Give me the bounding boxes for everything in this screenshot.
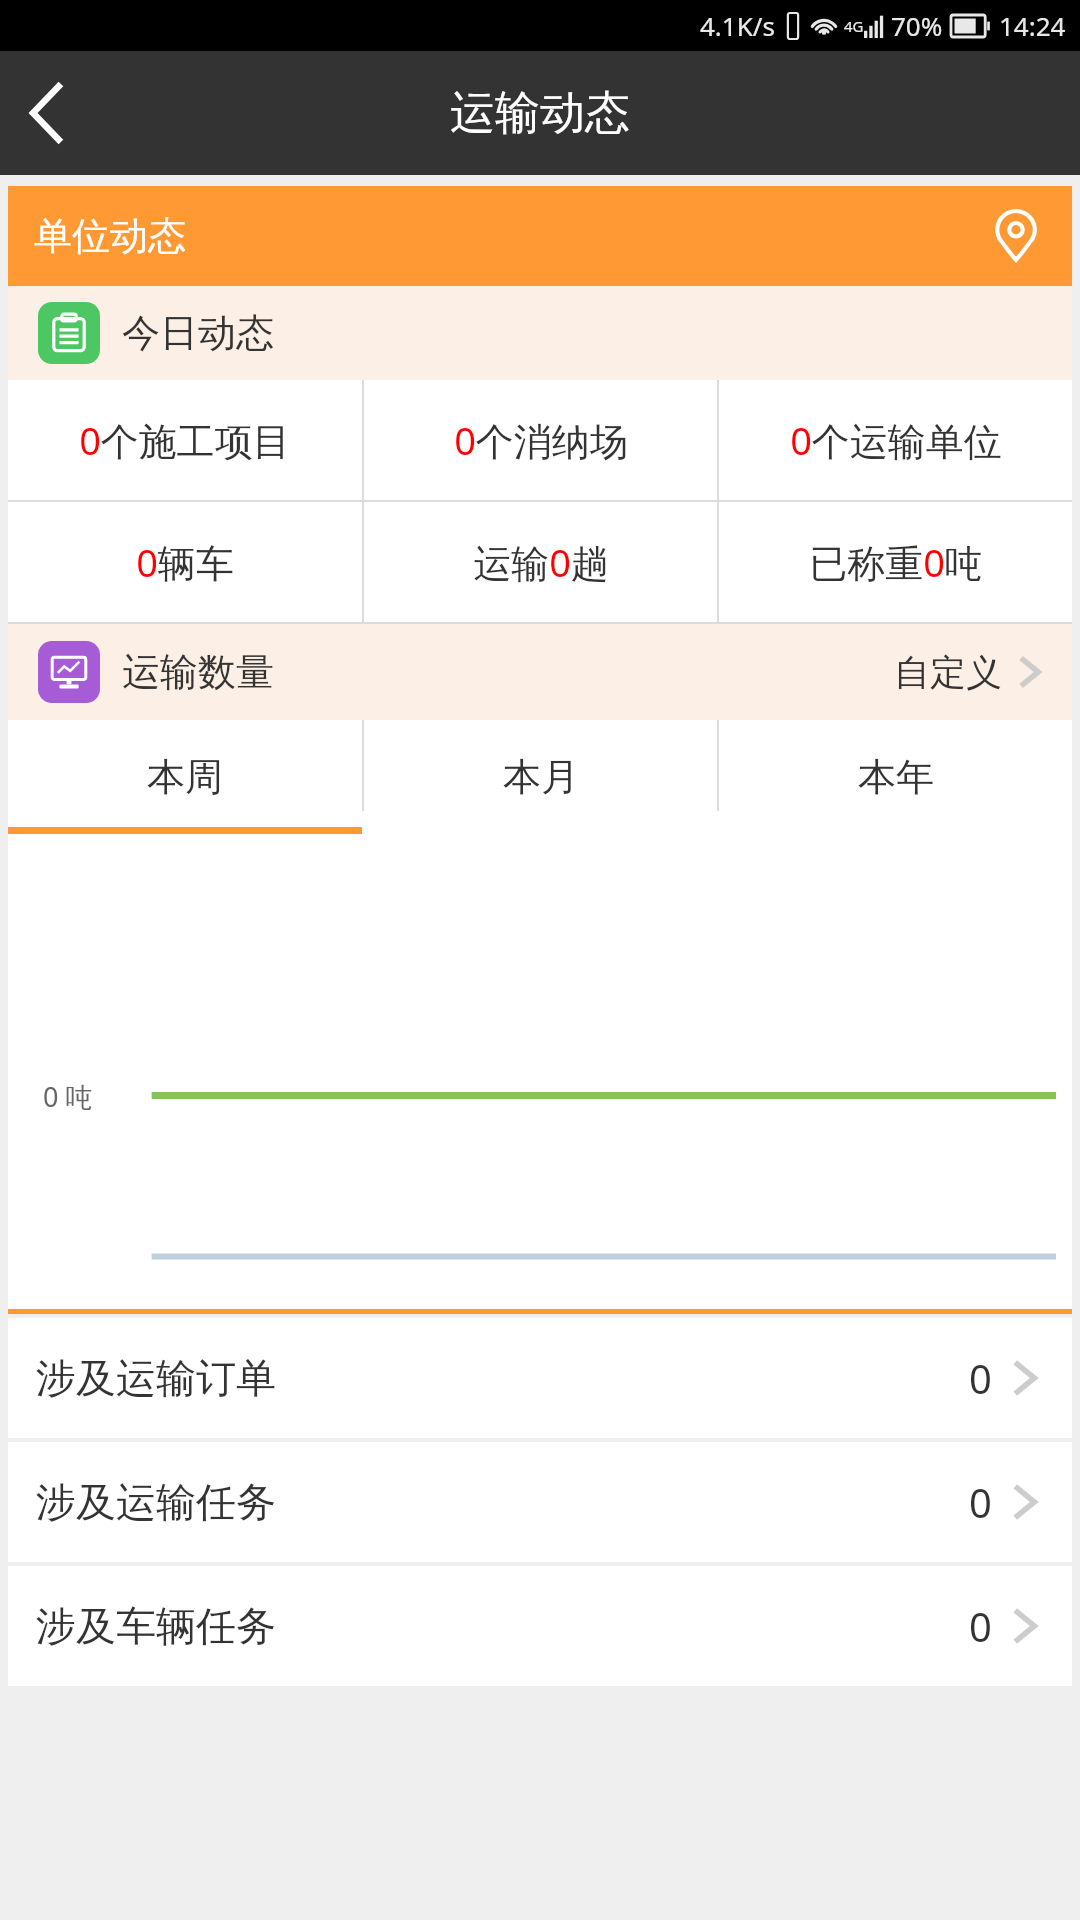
- button[interactable]: 涉及运输任务: [8, 1442, 1072, 1562]
- button[interactable]: 本年: [719, 720, 1072, 834]
- button[interactable]: 今日动态: [8, 286, 1072, 380]
- staticText: 涉及车辆任务: [36, 1601, 276, 1651]
- staticText: 4G: [844, 16, 864, 36]
- staticText: 涉及运输订单: [36, 1353, 276, 1403]
- button[interactable]: 0个运输单位: [719, 380, 1072, 500]
- staticText: 4.1K/s: [700, 8, 775, 43]
- button[interactable]: 运输数量: [8, 624, 1072, 720]
- button[interactable]: 单位动态: [8, 186, 1072, 286]
- staticText: 0个消纳场: [454, 414, 628, 466]
- staticText: 70%: [891, 8, 943, 43]
- staticText: 0辆车: [136, 536, 234, 588]
- button[interactable]: 运输0趟: [364, 502, 717, 622]
- staticText: 本周: [147, 753, 223, 801]
- staticText: 本年: [858, 753, 934, 801]
- button[interactable]: 涉及车辆任务: [8, 1566, 1072, 1686]
- staticText: 0: [969, 1475, 992, 1529]
- staticText: 14:24: [999, 8, 1066, 43]
- staticText: 涉及运输任务: [36, 1477, 276, 1527]
- button[interactable]: 0个施工项目: [8, 380, 362, 500]
- button[interactable]: 0辆车: [8, 502, 362, 622]
- staticText: 运输0趟: [473, 536, 609, 588]
- button[interactable]: Location: [988, 208, 1044, 264]
- staticText: 0个施工项目: [79, 414, 291, 466]
- staticText: 0: [969, 1599, 992, 1653]
- button[interactable]: 本月: [364, 720, 717, 834]
- staticText: 0: [969, 1351, 992, 1405]
- staticText: 自定义: [894, 650, 1002, 695]
- staticText: 运输动态: [450, 85, 630, 142]
- staticText: 运输数量: [122, 648, 274, 696]
- staticText: 本月: [503, 753, 579, 801]
- button[interactable]: 已称重0吨: [719, 502, 1072, 622]
- button[interactable]: Back: [0, 65, 96, 161]
- staticText: 0 吨: [43, 1078, 93, 1115]
- button[interactable]: 涉及运输订单: [8, 1318, 1072, 1438]
- staticText: 今日动态: [122, 309, 274, 357]
- staticText: 已称重0吨: [809, 536, 983, 588]
- staticText: 0个运输单位: [790, 414, 1002, 466]
- staticText: 单位动态: [34, 212, 186, 260]
- button[interactable]: 本周: [8, 720, 362, 834]
- button[interactable]: 0个消纳场: [364, 380, 717, 500]
